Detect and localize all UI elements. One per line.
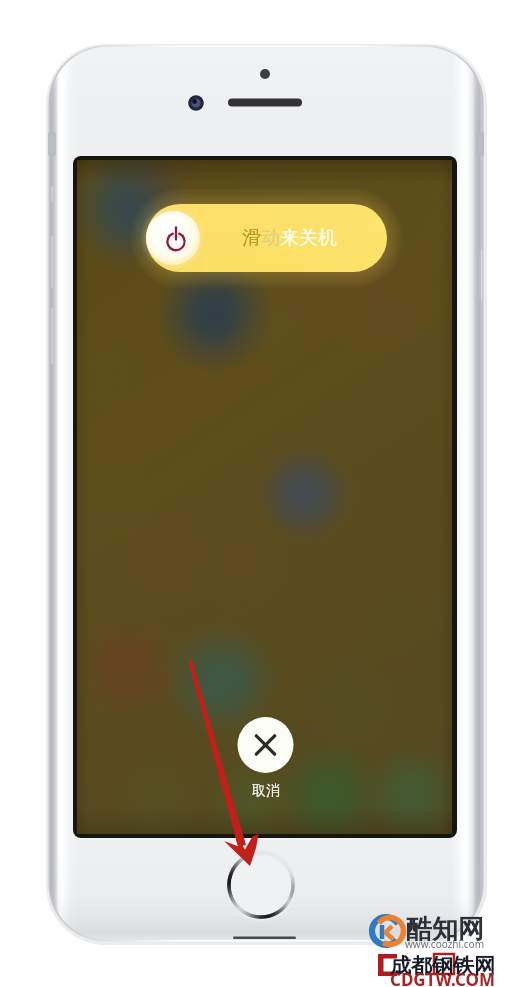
staticText: CDGTW.COM bbox=[390, 968, 496, 987]
staticText: 成都钢铁网 bbox=[390, 953, 495, 979]
staticText: 滑 bbox=[242, 226, 261, 250]
staticText: 动 bbox=[261, 226, 280, 250]
staticText: 取消 bbox=[252, 782, 280, 800]
button[interactable]: Cancel bbox=[237, 717, 293, 773]
staticText: 酷知网 bbox=[406, 913, 484, 946]
staticText: 来关机 bbox=[280, 226, 337, 250]
button[interactable]: Power off slider bbox=[146, 204, 202, 272]
staticText: www.coozhi.com bbox=[405, 937, 484, 951]
button[interactable]: 滑 bbox=[242, 226, 340, 250]
button[interactable]: Slide to power off bbox=[202, 204, 387, 272]
button[interactable]: 取消 bbox=[245, 781, 286, 801]
button[interactable]: Home button bbox=[229, 853, 293, 917]
